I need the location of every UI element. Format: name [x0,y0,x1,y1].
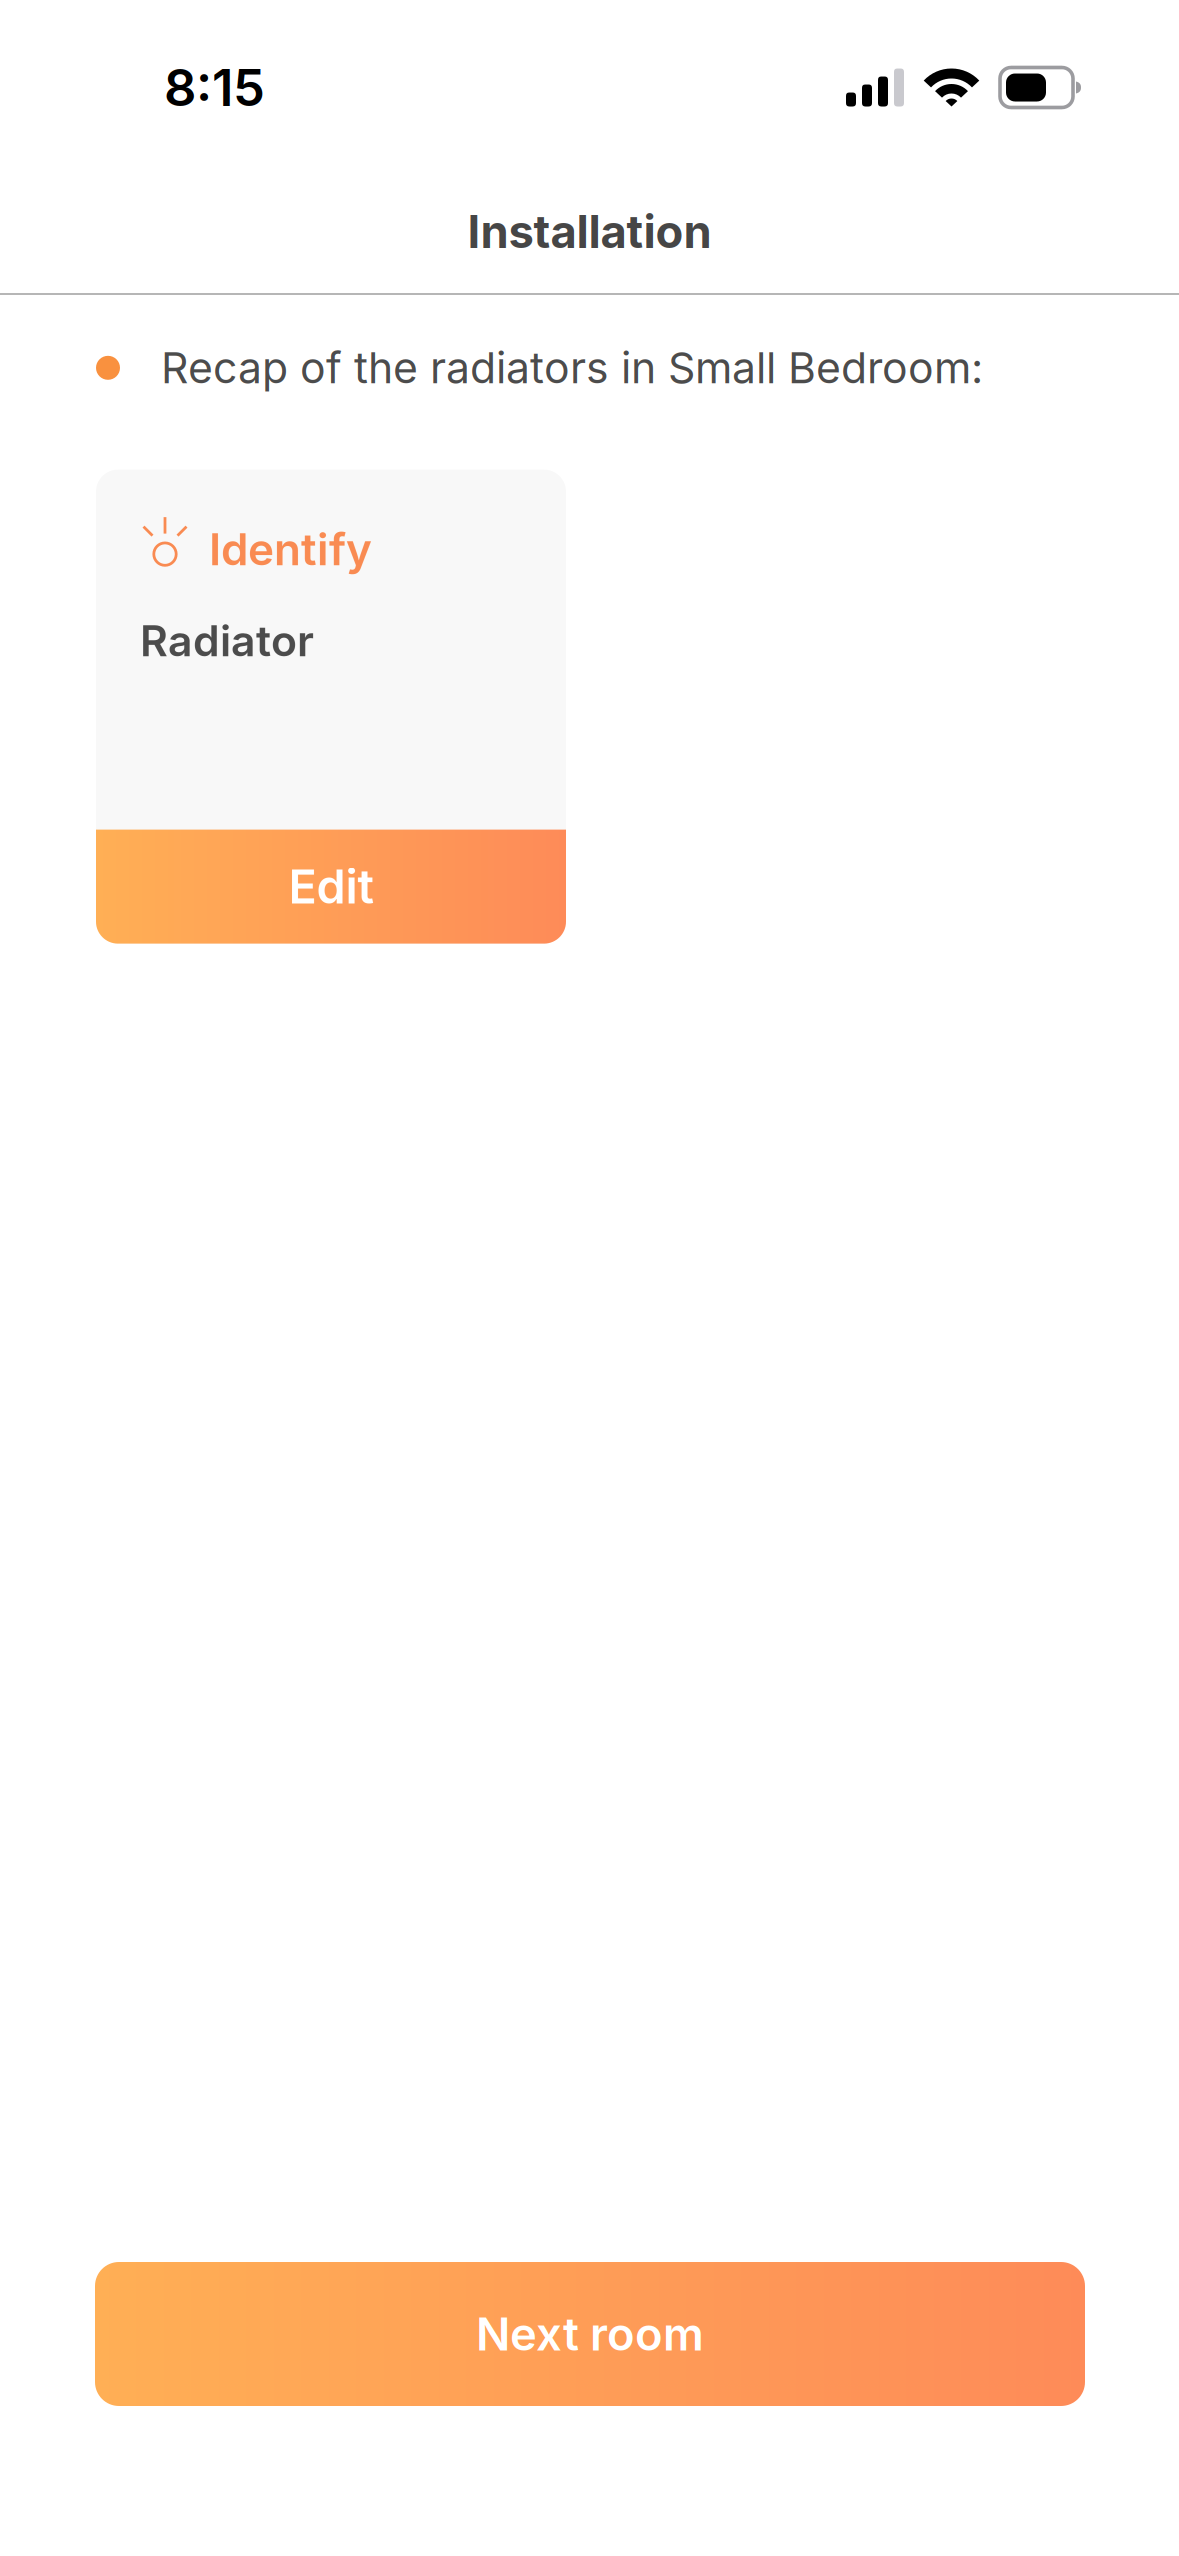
staticText: Edit [288,858,373,915]
staticText: 8:15 [164,57,265,118]
staticText: Installation [467,204,711,259]
staticText: Next room [476,2307,704,2361]
button[interactable]: Next room [95,2262,1085,2406]
staticText: Radiator [140,615,314,666]
button[interactable]: Identify [143,517,372,576]
button[interactable]: Edit [96,830,566,944]
staticText: Recap of the radiators in Small Bedroom: [161,342,983,394]
staticText: Identify [209,523,372,576]
